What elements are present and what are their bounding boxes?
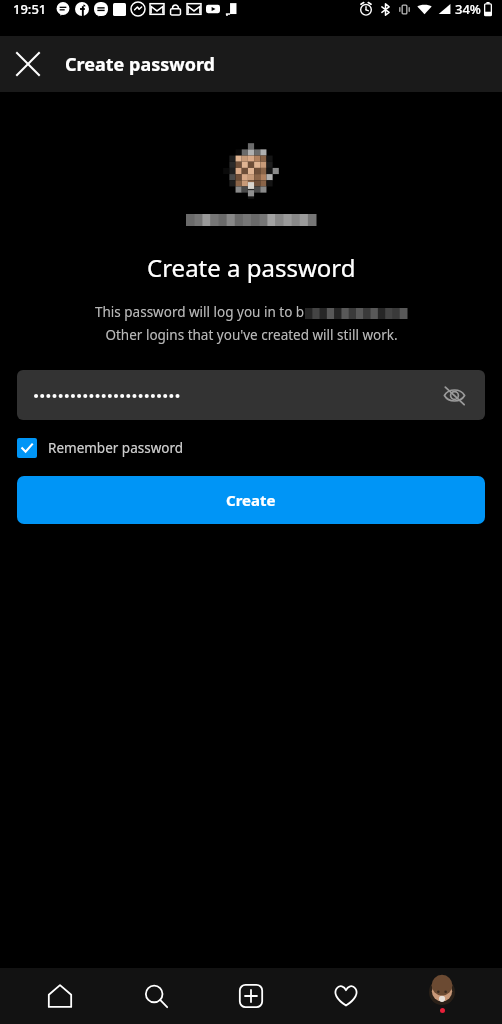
button[interactable]: Remember password bbox=[17, 434, 485, 462]
staticText: 19:51 bbox=[13, 0, 47, 18]
button[interactable]: Close bbox=[0, 36, 56, 92]
button[interactable]: Create bbox=[17, 476, 485, 524]
button[interactable]: Show password bbox=[17, 370, 485, 420]
button[interactable]: Search bbox=[121, 968, 191, 1024]
staticText: This password will log you in to b bbox=[95, 303, 305, 321]
staticText: Create a password bbox=[147, 251, 356, 284]
staticText: 34% bbox=[455, 0, 481, 18]
button[interactable]: Home bbox=[25, 968, 95, 1024]
button[interactable]: Activity bbox=[311, 968, 381, 1024]
staticText: Create password bbox=[65, 52, 215, 77]
button[interactable]: Profile bbox=[407, 968, 477, 1024]
button[interactable]: Show password bbox=[437, 378, 471, 412]
staticText: Remember password bbox=[48, 439, 184, 457]
staticText: Other logins that you've created will st… bbox=[105, 326, 398, 344]
button[interactable]: Create bbox=[216, 968, 286, 1024]
staticText: Create bbox=[226, 490, 276, 510]
